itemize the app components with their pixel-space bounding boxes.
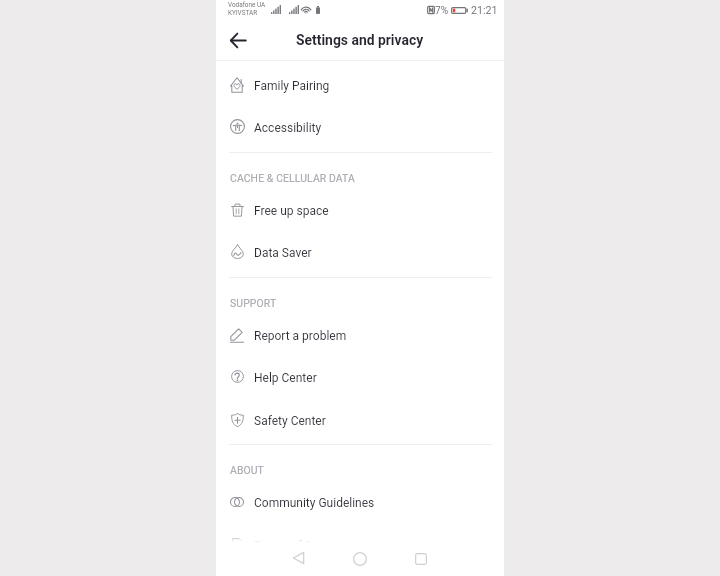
staticText: Settings and privacy xyxy=(296,32,424,48)
staticText: Community Guidelines xyxy=(254,496,375,510)
staticText: Help Center xyxy=(254,371,317,385)
button[interactable]: Safety Center xyxy=(216,399,504,442)
staticText: Report a problem xyxy=(254,329,347,343)
button[interactable]: Report a problem xyxy=(216,314,504,357)
button[interactable]: Family Pairing xyxy=(216,64,504,107)
staticText: CACHE & CELLULAR DATA xyxy=(230,172,355,184)
staticText: Family Pairing xyxy=(254,79,330,93)
button[interactable]: Community Guidelines xyxy=(216,481,504,524)
staticText: Free up space xyxy=(254,204,329,218)
staticText: KYIVSTAR xyxy=(228,9,258,17)
button[interactable]: Help Center xyxy=(216,356,504,399)
staticText: 21:21 xyxy=(471,4,498,17)
button[interactable]: Back xyxy=(223,25,253,55)
staticText: Vodafone UA xyxy=(228,1,266,9)
button[interactable]: Free up space xyxy=(216,189,504,232)
staticText: Safety Center xyxy=(254,414,326,428)
staticText: 7% xyxy=(435,5,449,17)
button[interactable]: Back xyxy=(293,552,304,564)
button[interactable]: Recents xyxy=(415,553,427,565)
button[interactable]: Data Saver xyxy=(216,231,504,274)
staticText: ABOUT xyxy=(230,464,264,476)
button[interactable]: Home xyxy=(353,552,367,566)
button[interactable]: Accessibility xyxy=(216,106,504,149)
staticText: Accessibility xyxy=(254,121,322,135)
button[interactable]: Terms of Service xyxy=(216,524,504,567)
staticText: SUPPORT xyxy=(230,297,277,309)
staticText: Data Saver xyxy=(254,246,312,260)
